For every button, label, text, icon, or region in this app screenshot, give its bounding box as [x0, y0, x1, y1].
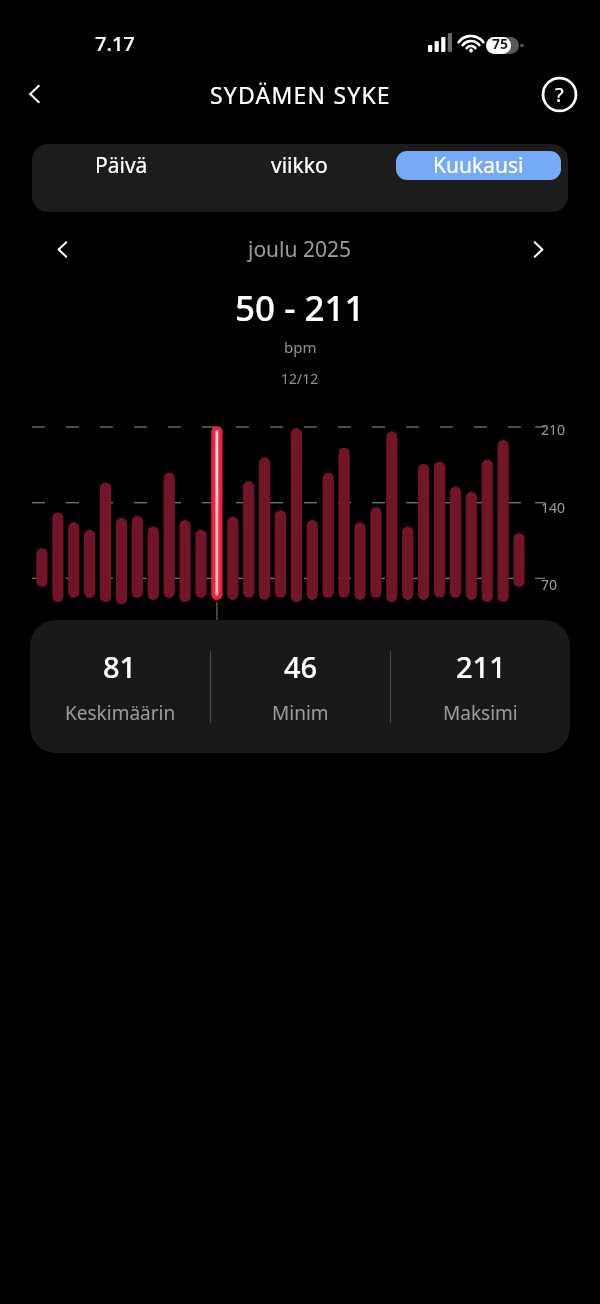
- button[interactable]: 211: [391, 647, 570, 726]
- staticText: 46: [284, 647, 318, 686]
- staticText: 210: [541, 420, 566, 439]
- staticText: 70: [541, 575, 558, 594]
- button[interactable]: 81: [30, 647, 210, 726]
- staticText: Maksimi: [443, 700, 518, 726]
- staticText: ?: [555, 81, 564, 108]
- button[interactable]: Kuukausi: [396, 151, 561, 180]
- staticText: SYDÄMEN SYKE: [210, 79, 391, 110]
- staticText: 28: [466, 666, 490, 685]
- staticText: Minim: [272, 700, 329, 726]
- staticText: viikko: [271, 151, 328, 180]
- staticText: 75: [492, 34, 509, 53]
- button[interactable]: 46: [211, 647, 390, 726]
- staticText: joulu 2025: [248, 235, 352, 264]
- button[interactable]: Päivä: [39, 151, 203, 180]
- staticText: Keskimäärin: [65, 700, 176, 726]
- staticText: Kuukausi: [433, 151, 524, 180]
- staticText: bpm: [284, 337, 317, 357]
- staticText: 7.17: [95, 30, 135, 57]
- button[interactable]: Help: [537, 72, 581, 116]
- staticText: 50 - 211: [235, 284, 365, 332]
- button[interactable]: Previous month: [42, 229, 82, 269]
- button[interactable]: Next month: [518, 229, 558, 269]
- button[interactable]: Back: [12, 70, 60, 118]
- staticText: 12/12: [281, 369, 319, 388]
- button[interactable]: viikko: [217, 151, 382, 180]
- staticText: 140: [541, 498, 566, 517]
- staticText: 81: [103, 647, 137, 686]
- staticText: 211: [456, 647, 506, 686]
- staticText: Päivä: [95, 151, 148, 180]
